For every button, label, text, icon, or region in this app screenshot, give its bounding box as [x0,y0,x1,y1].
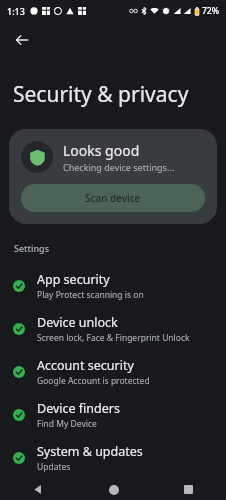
button[interactable]: Device unlock [0,307,226,350]
staticText: Scan device [85,191,141,205]
button[interactable]: Recent apps [151,479,226,500]
staticText: Updates [37,461,71,473]
staticText: Screen lock, Face & Fingerprint Unlock [37,332,190,344]
staticText: Play Protect scanning is on [37,289,144,301]
button[interactable]: Scan device [21,184,205,212]
staticText: App security [37,271,110,288]
staticText: Find My Device [37,418,97,430]
staticText: Device unlock [37,314,118,331]
staticText: Google Account is protected [37,375,150,387]
button[interactable]: System & updates [0,436,226,479]
button[interactable]: Account security [0,350,226,393]
button[interactable]: Looks good [9,129,217,224]
staticText: Looks good [63,141,140,160]
button[interactable]: Device finders [0,393,226,436]
staticText: Checking device settings… [63,161,175,173]
staticText: System & updates [37,443,143,460]
button[interactable]: Back [6,24,38,56]
staticText: 1:13 [7,5,25,17]
staticText: Settings [14,242,50,254]
button[interactable]: Home [76,479,151,500]
staticText: Account security [37,357,134,374]
staticText: Device finders [37,400,120,417]
button[interactable]: Back [0,479,76,500]
button[interactable]: App security [0,264,226,307]
staticText: 72% [202,5,219,17]
staticText: Security & privacy [13,80,189,109]
